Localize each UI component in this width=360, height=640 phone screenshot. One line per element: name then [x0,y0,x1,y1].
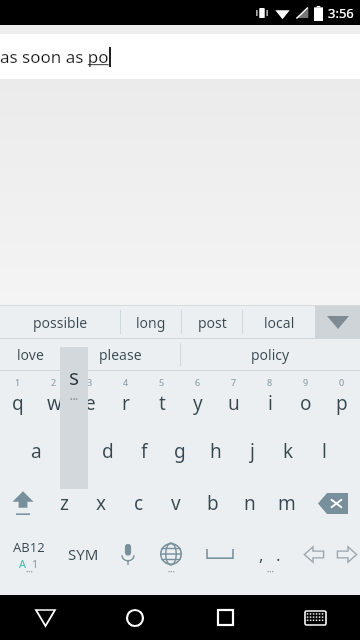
button[interactable]: Home [90,595,180,640]
button[interactable]: 4 [108,373,144,425]
staticText: ••• [168,568,175,576]
button[interactable]: v [157,477,194,529]
button[interactable]: 3 [72,373,108,425]
button[interactable]: 8 [252,373,288,425]
staticText: 6 [195,376,201,388]
button[interactable]: m [268,477,305,529]
staticText: ••• [26,568,33,576]
button[interactable]: g [162,425,198,477]
button[interactable]: d [90,425,126,477]
staticText: x [96,490,107,516]
button[interactable]: 5 [144,373,180,425]
button[interactable]: Recent apps [180,595,270,640]
staticText: 1 [15,376,21,388]
staticText: d [102,438,114,464]
button[interactable]: f [126,425,162,477]
staticText: u [228,390,240,416]
staticText: h [210,438,222,464]
staticText: possible [33,313,88,332]
staticText: local [264,313,295,332]
staticText: 8 [267,376,273,388]
staticText: please [99,345,142,364]
staticText: t [159,390,166,416]
staticText: 7 [231,376,237,388]
button[interactable]: b [194,477,231,529]
staticText: SYM [68,544,99,564]
button[interactable]: possible [0,306,120,338]
staticText: 9 [303,376,309,388]
staticText: n [244,490,256,516]
button[interactable]: z [45,477,83,529]
button[interactable]: 6 [180,373,216,425]
button[interactable]: 1 [0,373,36,425]
button[interactable]: x [83,477,120,529]
staticText: f [141,438,148,464]
staticText: policy [251,345,290,364]
staticText: i [268,390,273,416]
button[interactable]: Backspace [305,477,360,529]
staticText: long [136,313,166,332]
button[interactable]: as soon as po [0,34,360,79]
staticText: p [336,390,348,416]
button[interactable]: Change language [148,529,194,579]
staticText: , [259,543,264,566]
staticText: s [69,363,80,392]
staticText: w [47,390,62,416]
staticText: 2 [51,376,57,388]
staticText: q [12,390,24,416]
button[interactable]: long [121,306,181,338]
button[interactable]: 9 [288,373,324,425]
staticText: l [322,438,327,464]
staticText: love [17,345,44,364]
button[interactable]: j [234,425,270,477]
staticText: A [19,556,27,571]
staticText: 4 [123,376,129,388]
button[interactable]: c [120,477,157,529]
staticText: ••• [267,568,274,576]
button[interactable]: Voice input [108,529,148,579]
button[interactable]: Move cursor left [294,529,334,579]
button[interactable]: s [54,425,90,477]
staticText: AB12 [13,538,45,556]
button[interactable]: AB12 [0,529,58,579]
button[interactable]: love [0,339,60,370]
staticText: z [60,490,69,516]
button[interactable]: Shift [0,477,45,529]
staticText: post [198,313,227,332]
staticText: b [207,490,219,516]
button[interactable]: 7 [216,373,252,425]
button[interactable]: n [231,477,268,529]
button[interactable]: policy [181,339,360,370]
button[interactable]: , [246,529,294,579]
button[interactable]: h [198,425,234,477]
staticText: a [31,438,42,464]
button[interactable]: 2 [36,373,72,425]
button[interactable]: 0 [324,373,360,425]
staticText: 0 [339,376,345,388]
staticText: m [278,490,296,516]
button[interactable]: SYM [58,529,108,579]
staticText: as soon as po [0,45,109,68]
button[interactable]: Expand suggestions [315,306,360,338]
button[interactable]: post [182,306,242,338]
button[interactable]: a [18,425,54,477]
button[interactable]: please [60,339,180,370]
button[interactable]: Move cursor right [334,529,360,579]
staticText: o [300,390,312,416]
button[interactable]: l [306,425,342,477]
staticText: 3 [87,376,93,388]
staticText: c [134,490,144,516]
button[interactable]: local [243,306,315,338]
button[interactable]: Space [194,529,246,579]
staticText: g [174,438,186,464]
staticText: 5 [159,376,165,388]
staticText: j [250,438,255,464]
staticText: v [171,490,181,516]
staticText: r [122,390,130,416]
button[interactable]: Switch keyboard [270,595,360,640]
button[interactable]: k [270,425,306,477]
staticText: y [193,390,203,416]
staticText: e [85,390,96,416]
button[interactable]: Hide keyboard [0,595,90,640]
